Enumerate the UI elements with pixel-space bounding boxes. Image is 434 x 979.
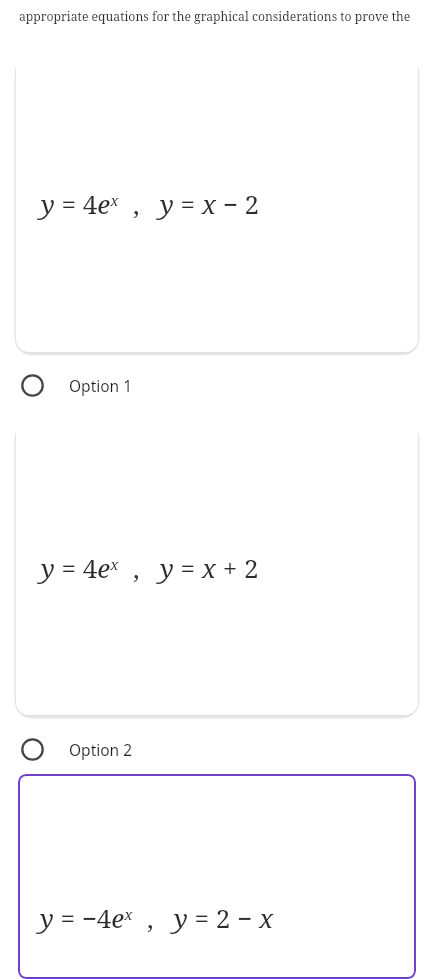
staticText: Option 2 xyxy=(69,739,133,760)
button[interactable]: Select Option 2 xyxy=(0,733,434,765)
other: Select Option 2 xyxy=(21,738,44,761)
button[interactable]: y = 4ex xyxy=(16,420,418,715)
staticText: , xyxy=(133,550,140,585)
button[interactable]: y = 4ex xyxy=(16,55,418,352)
staticText: , xyxy=(133,186,140,221)
staticText: , xyxy=(147,900,154,935)
button[interactable]: y = −4ex xyxy=(18,774,416,979)
staticText: Option 1 xyxy=(69,375,133,396)
staticText: appropriate equations for the graphical … xyxy=(19,8,434,25)
staticText: y = 4ex xyxy=(41,550,119,585)
button[interactable]: Select Option 1 xyxy=(0,369,434,401)
staticText: y = x + 2 xyxy=(160,550,259,585)
staticText: y = 2 − x xyxy=(174,900,274,935)
other: Select Option 1 xyxy=(21,374,44,397)
staticText: y = 4ex xyxy=(41,186,119,221)
staticText: y = −4ex xyxy=(40,900,133,935)
staticText: y = x − 2 xyxy=(160,186,260,221)
